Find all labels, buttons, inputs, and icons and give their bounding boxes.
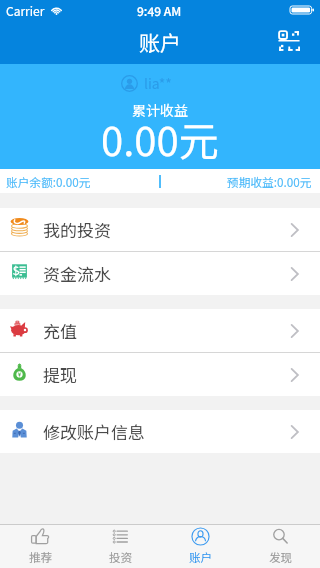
staticText: 充值 [43,318,77,343]
button[interactable]: 发现 [240,525,320,568]
staticText: 0.00元 [101,110,219,168]
staticText: lia** [144,73,172,93]
button[interactable]: 推荐 [0,525,80,568]
button[interactable]: 账户 [160,525,240,568]
staticText: 预期收益:0.00元 [227,173,312,190]
button[interactable]: 我的投资 [0,208,320,251]
staticText: 推荐 [29,549,52,566]
staticText: Carrier [6,2,45,19]
staticText: 累计收益 [132,100,188,120]
staticText: 提现 [43,362,77,387]
button[interactable]: 投资 [80,525,160,568]
staticText: 资金流水 [43,261,111,286]
staticText: 修改账户信息 [43,419,145,444]
button[interactable]: Scan QR code [271,23,307,59]
staticText: 发现 [269,549,292,566]
staticText: 投资 [109,549,132,566]
button[interactable]: 充值 [0,309,320,352]
button[interactable]: 提现 [0,353,320,396]
button[interactable]: lia** [121,73,172,93]
staticText: 账户 [189,549,212,566]
staticText: 账户 [139,27,181,57]
staticText: 账户余额:0.00元 [6,173,91,190]
staticText: 9:49 AM [137,2,182,19]
button[interactable]: 资金流水 [0,252,320,295]
button[interactable]: 修改账户信息 [0,410,320,453]
staticText: 我的投资 [43,217,111,242]
